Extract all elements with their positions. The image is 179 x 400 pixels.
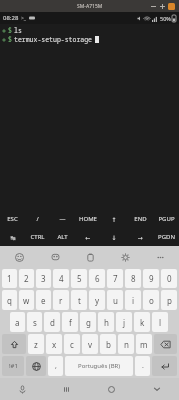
button[interactable]: r (53, 290, 69, 310)
button[interactable]: w (19, 290, 34, 310)
button[interactable]: 5 (71, 269, 87, 288)
button[interactable]: CTRL (25, 228, 50, 246)
button[interactable]: PGUP (153, 210, 179, 228)
button[interactable]: Maximize (158, 2, 167, 11)
button[interactable]: 0 (161, 269, 177, 288)
staticText: . (142, 361, 144, 371)
staticText: 2 (24, 273, 29, 284)
button[interactable]: e (36, 290, 51, 310)
button[interactable]: More options (143, 246, 178, 268)
button[interactable]: Shift (2, 334, 26, 354)
button[interactable]: ↹ (0, 228, 25, 246)
staticText: ↑ (111, 216, 117, 223)
staticText: $ (8, 35, 12, 44)
button[interactable]: o (143, 290, 159, 310)
button[interactable]: l (152, 312, 168, 332)
button[interactable]: ESC (0, 210, 25, 228)
staticText: h (104, 317, 109, 328)
staticText: d (50, 317, 55, 328)
button[interactable]: Backspace (154, 334, 177, 354)
button[interactable]: Enter (152, 356, 177, 376)
button[interactable]: t (71, 290, 87, 310)
button[interactable]: m (136, 334, 152, 354)
button[interactable]: Change language (26, 356, 46, 376)
staticText: 7 (113, 273, 118, 284)
button[interactable]: Clipboard (73, 246, 108, 268)
staticText: i (132, 295, 135, 306)
button[interactable]: → (127, 228, 153, 246)
button[interactable]: a (10, 312, 25, 332)
button[interactable]: ALT (50, 228, 75, 246)
button[interactable]: 2 (19, 269, 34, 288)
staticText: → (137, 234, 143, 241)
staticText: f (69, 317, 72, 328)
staticText: !#1 (9, 362, 18, 370)
button[interactable]: 1 (2, 269, 17, 288)
button[interactable]: . (135, 356, 150, 376)
button[interactable]: 9 (143, 269, 159, 288)
button[interactable]: — (50, 210, 75, 228)
staticText: termux-setup-storage (14, 35, 93, 44)
staticText: z (34, 339, 38, 350)
button[interactable]: b (100, 334, 116, 354)
button[interactable]: z (28, 334, 44, 354)
button[interactable]: i (125, 290, 141, 310)
staticText: t (78, 295, 81, 306)
button[interactable]: j (116, 312, 132, 332)
staticText: q (7, 295, 12, 306)
button[interactable]: Minimize (149, 2, 158, 11)
button[interactable]: u (107, 290, 123, 310)
button[interactable]: Português (BR) (65, 356, 133, 376)
button[interactable]: g (80, 312, 96, 332)
button[interactable]: Stickers (37, 246, 73, 268)
button[interactable]: 3 (36, 269, 51, 288)
staticText: y (95, 295, 100, 306)
button[interactable]: d (44, 312, 60, 332)
staticText: r (59, 295, 63, 306)
button[interactable]: q (2, 290, 17, 310)
button[interactable]: Home (89, 378, 134, 400)
staticText: PGDN (158, 233, 175, 241)
button[interactable]: 6 (89, 269, 105, 288)
staticText: u (113, 295, 118, 306)
staticText: ALT (57, 233, 68, 241)
button[interactable]: f (62, 312, 78, 332)
staticText: , (55, 361, 57, 371)
button[interactable]: / (25, 210, 50, 228)
button[interactable]: h (98, 312, 114, 332)
button[interactable]: 8 (125, 269, 141, 288)
button[interactable]: c (64, 334, 80, 354)
button[interactable]: , (48, 356, 63, 376)
button[interactable]: Settings (108, 246, 143, 268)
button[interactable]: Voice input (0, 378, 44, 400)
button[interactable]: Emoji (1, 246, 37, 268)
staticText: 6 (95, 273, 100, 284)
button[interactable]: s (27, 312, 42, 332)
button[interactable]: n (118, 334, 134, 354)
button[interactable]: y (89, 290, 105, 310)
button[interactable]: Hide keyboard (134, 378, 179, 400)
staticText: ESC (7, 215, 18, 223)
staticText: s (33, 317, 37, 328)
button[interactable]: k (134, 312, 150, 332)
button[interactable]: 4 (53, 269, 69, 288)
button[interactable]: 7 (107, 269, 123, 288)
staticText: >_ (21, 15, 27, 22)
button[interactable]: ← (75, 228, 101, 246)
staticText: j (123, 317, 126, 328)
button[interactable]: v (82, 334, 98, 354)
button[interactable]: ↑ (101, 210, 127, 228)
button[interactable]: !#1 (2, 356, 24, 376)
staticText: x (52, 339, 57, 350)
button[interactable]: PGDN (153, 228, 179, 246)
button[interactable]: x (46, 334, 62, 354)
button[interactable]: p (161, 290, 177, 310)
button[interactable]: HOME (75, 210, 101, 228)
button[interactable]: END (127, 210, 153, 228)
button[interactable]: Recents (44, 378, 89, 400)
button[interactable]: Close (167, 2, 176, 11)
staticText: 1 (7, 273, 12, 284)
staticText: 8 (131, 273, 136, 284)
button[interactable]: ↓ (101, 228, 127, 246)
staticText: v (88, 339, 93, 350)
